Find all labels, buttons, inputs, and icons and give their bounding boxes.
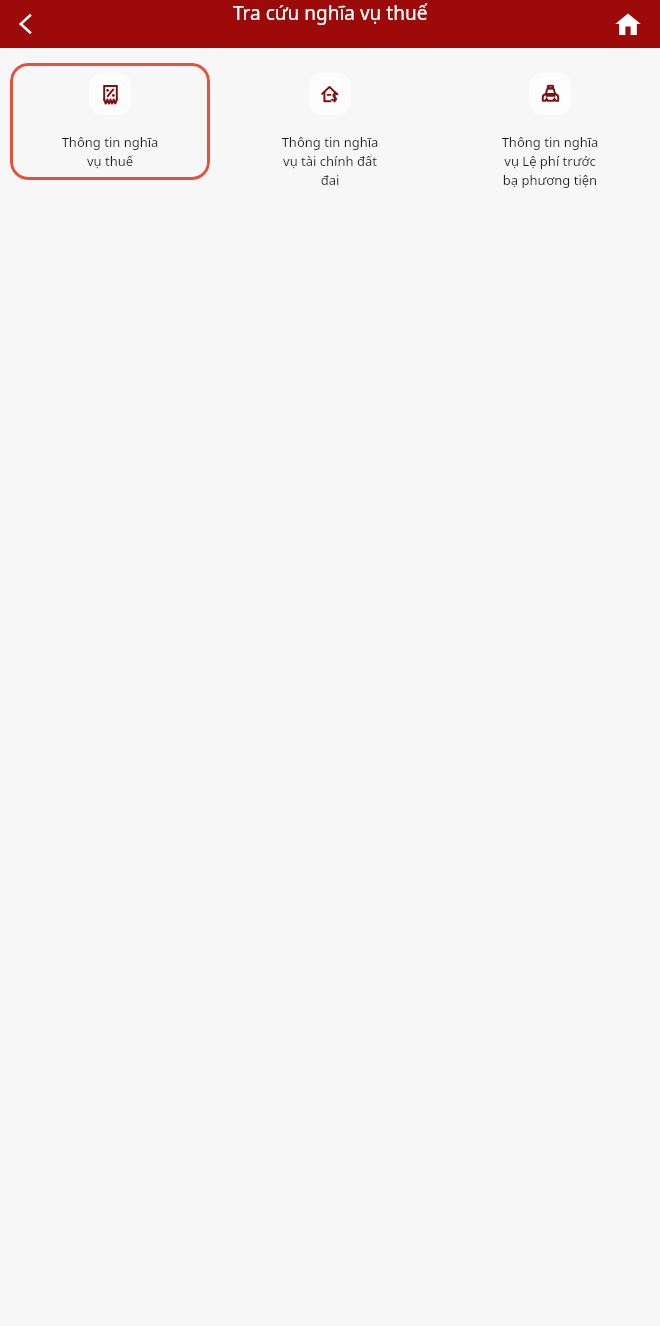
button[interactable]: Home [606, 2, 650, 46]
staticText: Tra cứu nghĩa vụ thuế [233, 0, 428, 26]
staticText: Thông tin nghĩa vụ thuế [12, 133, 208, 170]
staticText: Thông tin nghĩa vụ Lệ phí trước bạ phươn… [452, 133, 648, 189]
button[interactable]: Thông tin nghĩa vụ Lệ phí trước bạ phươn… [450, 63, 650, 199]
button[interactable]: Thông tin nghĩa vụ thuế [10, 63, 210, 180]
staticText: Thông tin nghĩa vụ tài chính đất đai [232, 133, 428, 189]
button[interactable]: Back [4, 2, 48, 46]
button[interactable]: Thông tin nghĩa vụ tài chính đất đai [230, 63, 430, 199]
